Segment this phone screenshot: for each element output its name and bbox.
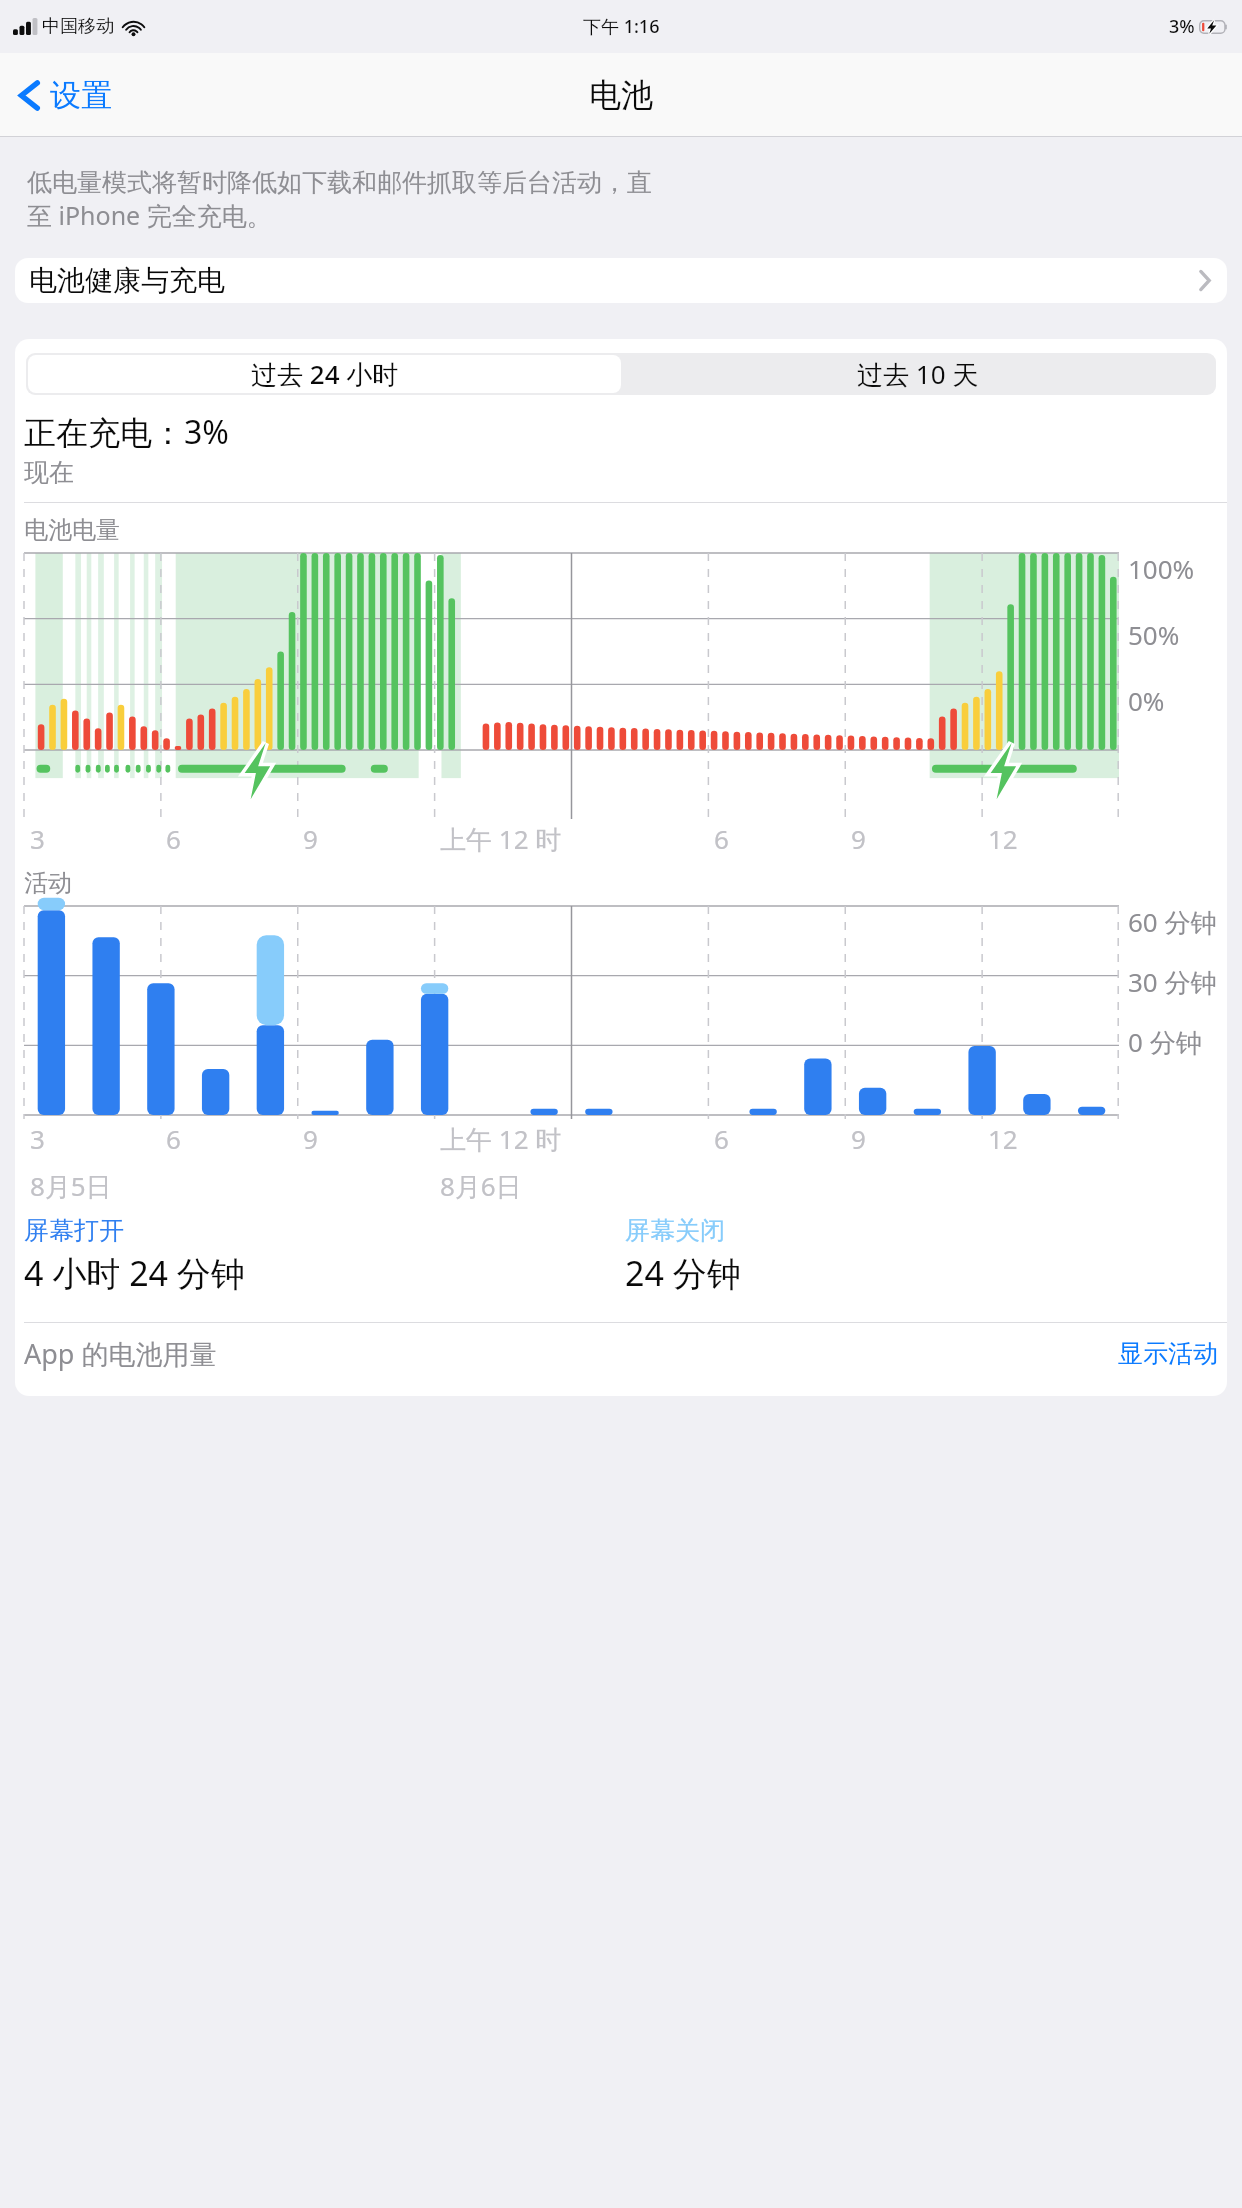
staticText: 50% (1128, 617, 1180, 652)
staticText: 低电量模式将暂时降低如下载和邮件抓取等后台活动，直 (27, 167, 652, 198)
staticText: 屏幕关闭 (625, 1215, 725, 1246)
staticText: 30 分钟 (1128, 964, 1217, 1000)
staticText: 上午 12 时 (440, 1121, 562, 1157)
staticText: 12 (988, 821, 1018, 856)
staticText: 6 (714, 1121, 729, 1156)
staticText: 4 小时 24 分钟 (24, 1250, 245, 1296)
staticText: 6 (166, 821, 181, 856)
staticText: 电池健康与充电 (29, 263, 225, 298)
staticText: 100% (1128, 551, 1195, 586)
staticText: 9 (303, 1121, 318, 1156)
staticText: 3 (30, 1121, 45, 1156)
button[interactable]: Back (0, 66, 128, 125)
staticText: 24 分钟 (625, 1250, 741, 1296)
staticText: 下午 1:16 (583, 14, 660, 39)
staticText: 6 (166, 1121, 181, 1156)
button[interactable]: 过去 24 小时 (28, 355, 621, 393)
staticText: 电池电量 (24, 515, 120, 545)
staticText: 9 (851, 821, 866, 856)
staticText: 8月5日 (30, 1168, 112, 1204)
staticText: 中国移动 (42, 15, 114, 38)
staticText: 活动 (24, 868, 72, 898)
staticText: 上午 12 时 (440, 821, 562, 857)
button[interactable]: 电池健康与充电 (15, 258, 1227, 303)
button[interactable]: 显示活动 (1118, 1338, 1218, 1369)
staticText: 电池 (589, 75, 653, 115)
staticText: 现在 (24, 457, 74, 488)
staticText: 60 分钟 (1128, 904, 1217, 940)
button[interactable]: 过去 10 天 (621, 355, 1214, 393)
staticText: 8月6日 (440, 1168, 522, 1204)
staticText: 9 (303, 821, 318, 856)
staticText: 正在充电：3% (24, 410, 229, 454)
staticText: 12 (988, 1121, 1018, 1156)
staticText: 过去 24 小时 (251, 356, 399, 392)
staticText: 6 (714, 821, 729, 856)
staticText: 9 (851, 1121, 866, 1156)
staticText: 0% (1128, 683, 1165, 718)
staticText: 过去 10 天 (857, 356, 979, 392)
staticText: App 的电池用量 (24, 1335, 217, 1372)
staticText: 设置 (50, 76, 112, 115)
other: Back (18, 77, 41, 114)
staticText: 屏幕打开 (24, 1215, 124, 1246)
staticText: 显示活动 (1118, 1338, 1218, 1369)
staticText: 3% (1169, 14, 1195, 39)
staticText: 0 分钟 (1128, 1024, 1202, 1060)
staticText: 至 iPhone 完全充电。 (27, 198, 272, 232)
staticText: 3 (30, 821, 45, 856)
